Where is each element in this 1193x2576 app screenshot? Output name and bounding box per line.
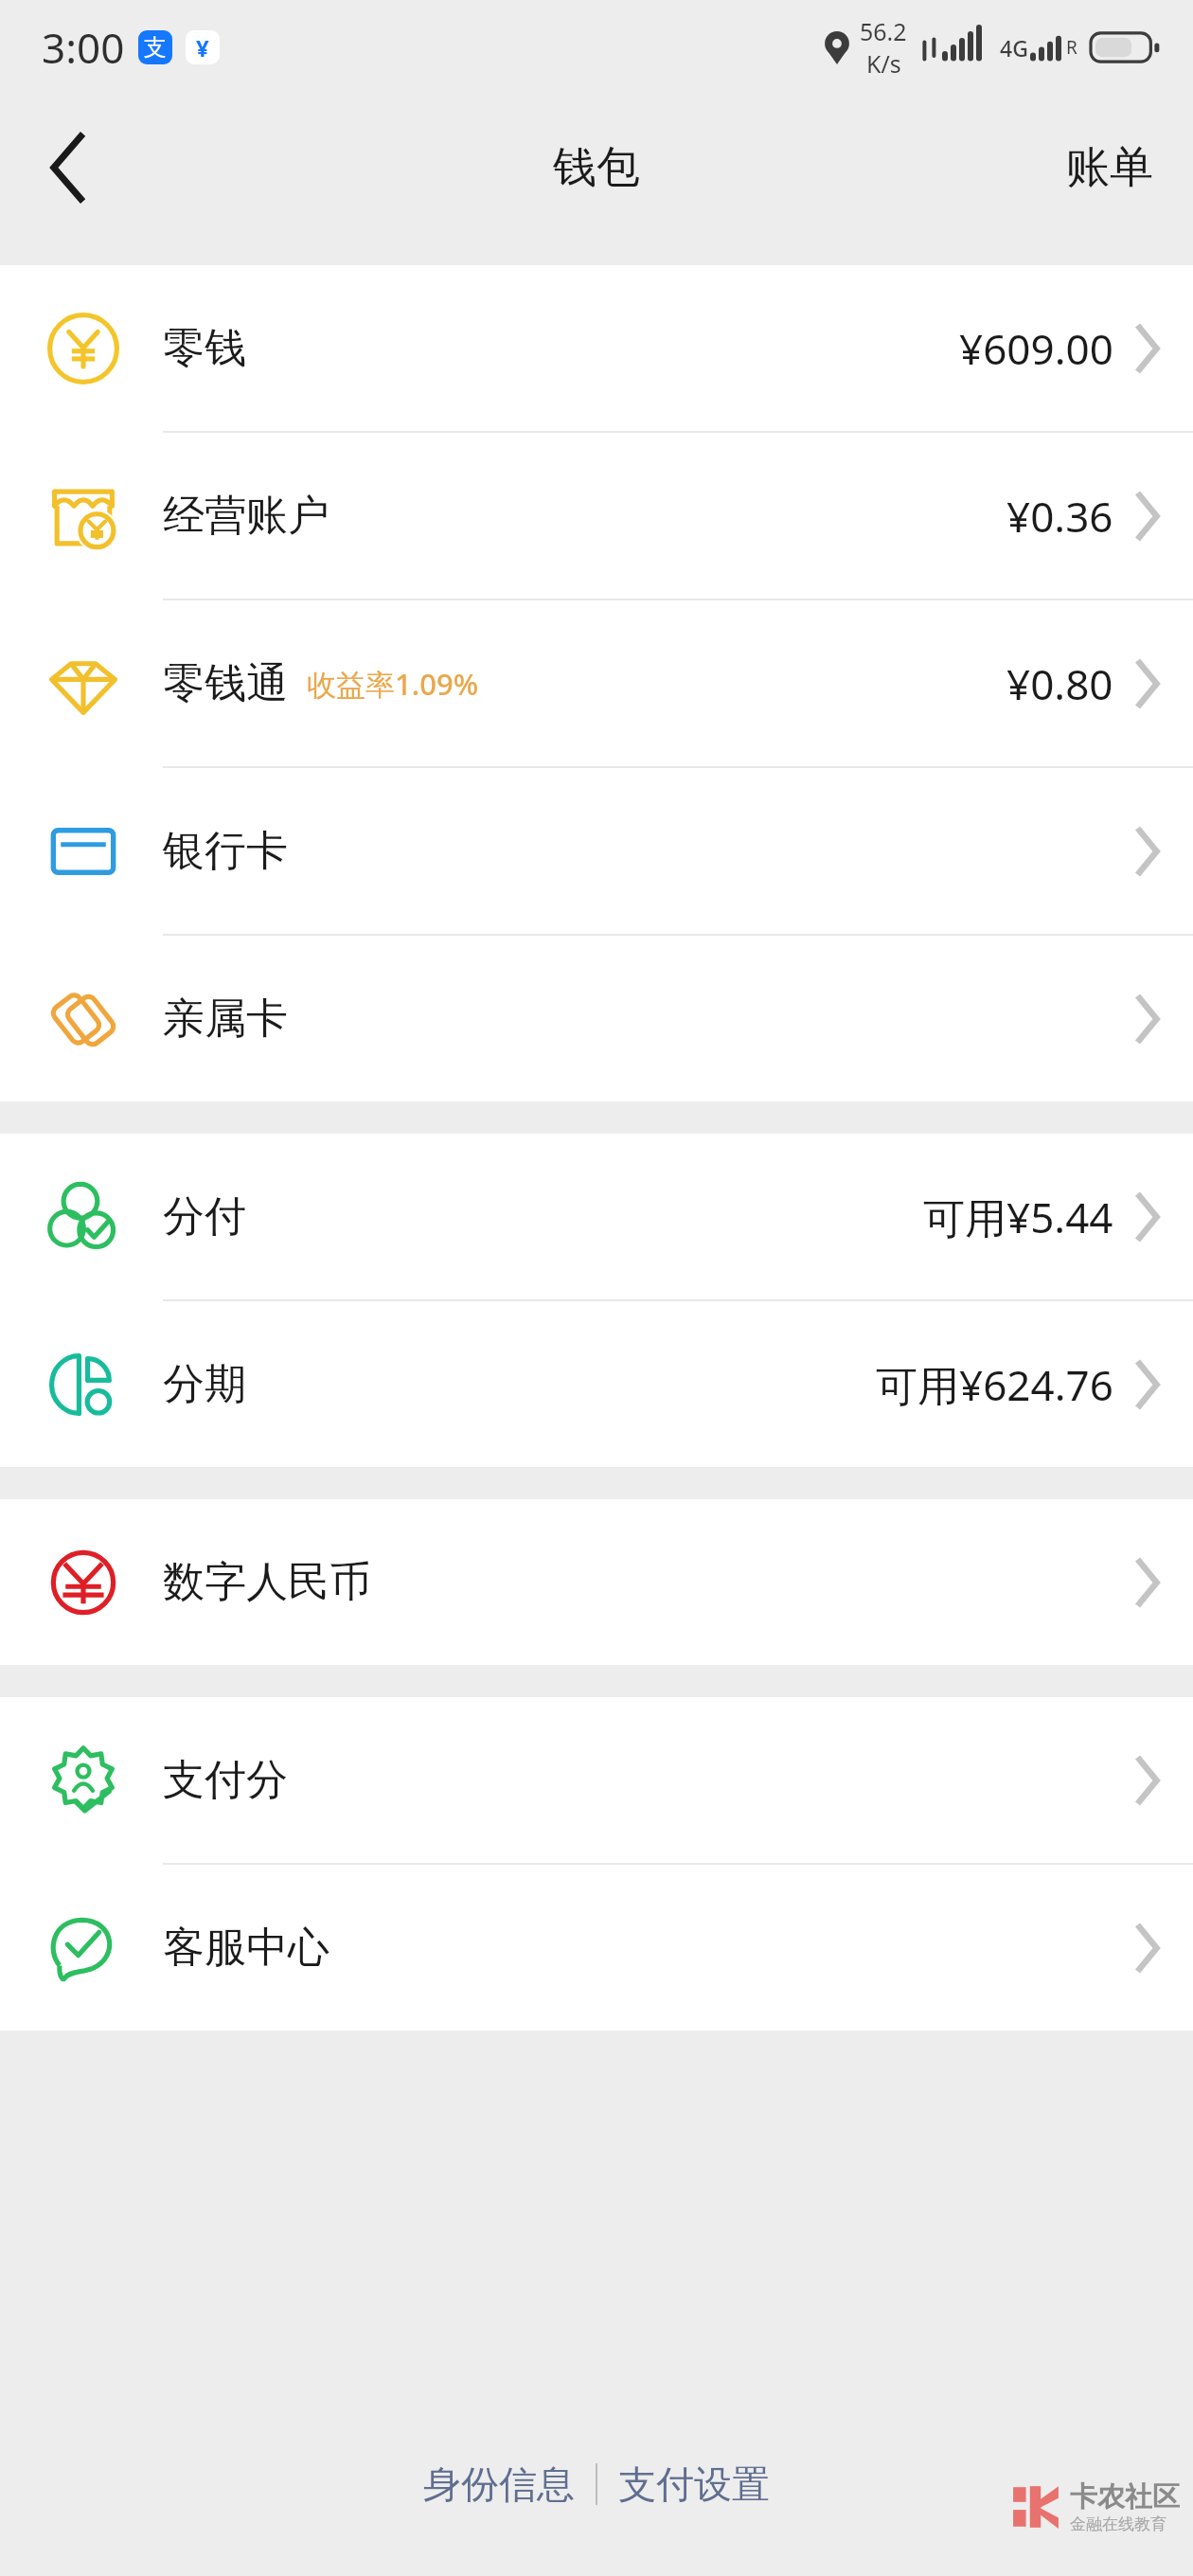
- button[interactable]: 账单: [1042, 123, 1178, 212]
- staticText: 客服中心: [163, 1922, 329, 1974]
- staticText: 可用¥624.76: [876, 1356, 1113, 1413]
- button[interactable]: 分付: [0, 1134, 1193, 1299]
- staticText: 账单: [1066, 140, 1153, 195]
- button[interactable]: 客服中心: [0, 1865, 1193, 2030]
- staticText: 4G: [1000, 33, 1028, 63]
- staticText: 分付: [163, 1190, 246, 1243]
- button[interactable]: 支付设置: [597, 2447, 791, 2521]
- staticText: ¥609.00: [959, 320, 1113, 377]
- staticText: 钱包: [553, 140, 640, 195]
- staticText: 经营账户: [163, 490, 329, 542]
- button[interactable]: 银行卡: [0, 768, 1193, 934]
- staticText: R: [1066, 35, 1077, 60]
- button[interactable]: 经营账户: [0, 433, 1193, 599]
- staticText: 支付分: [163, 1754, 288, 1806]
- button[interactable]: 零钱: [0, 265, 1193, 431]
- staticText: ¥: [196, 32, 209, 63]
- staticText: 金融在线教育: [1070, 2514, 1166, 2534]
- staticText: 56.2: [860, 15, 907, 47]
- button[interactable]: 数字人民币: [0, 1499, 1193, 1665]
- staticText: 3:00: [42, 19, 125, 76]
- button[interactable]: 返回: [11, 111, 125, 224]
- button[interactable]: 亲属卡: [0, 936, 1193, 1101]
- staticText: 数字人民币: [163, 1556, 371, 1608]
- button[interactable]: 支付分: [0, 1697, 1193, 1863]
- staticText: 支付设置: [618, 2460, 770, 2508]
- button[interactable]: 零钱通: [0, 600, 1193, 766]
- staticText: 卡农社区: [1070, 2479, 1180, 2514]
- staticText: 支: [144, 33, 167, 62]
- button[interactable]: 身份信息: [402, 2447, 596, 2521]
- staticText: ¥0.36: [1006, 488, 1113, 545]
- staticText: 收益率1.09%: [307, 664, 479, 704]
- staticText: 银行卡: [163, 825, 288, 877]
- button[interactable]: 分期: [0, 1301, 1193, 1467]
- staticText: 零钱: [163, 322, 246, 374]
- staticText: ¥0.80: [1006, 655, 1113, 712]
- staticText: 亲属卡: [163, 993, 288, 1045]
- staticText: 可用¥5.44: [923, 1189, 1113, 1245]
- staticText: 身份信息: [423, 2460, 575, 2508]
- staticText: K/s: [866, 47, 901, 80]
- staticText: 零钱通: [163, 657, 288, 709]
- staticText: 分期: [163, 1358, 246, 1410]
